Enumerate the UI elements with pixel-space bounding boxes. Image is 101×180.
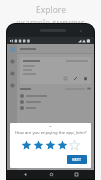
button[interactable]: Rate 2 stars <box>33 140 44 151</box>
button[interactable] <box>20 99 91 105</box>
button[interactable]: Delete <box>83 76 88 81</box>
button[interactable]: Rate 3 stars <box>45 140 56 151</box>
staticText: How are you enjoying the app, John? <box>15 130 87 136</box>
button[interactable]: Rate 4 stars <box>57 140 68 151</box>
button[interactable]: Settings <box>10 83 15 88</box>
button[interactable] <box>20 105 91 111</box>
button[interactable]: More options <box>88 47 91 50</box>
button[interactable]: NEXT <box>67 155 87 164</box>
button[interactable]: Rate 5 stars <box>69 140 80 151</box>
button[interactable]: Reports <box>10 71 15 76</box>
button[interactable]: Recent apps <box>68 170 84 179</box>
button[interactable]: Edit <box>73 76 78 81</box>
staticText: Explore <box>36 4 66 16</box>
staticText: NEXT <box>72 157 82 162</box>
button[interactable]: Rate 1 stars <box>21 140 32 151</box>
button[interactable]: Duplicate <box>63 76 68 81</box>
button[interactable]: Visibility <box>87 87 91 90</box>
button[interactable]: Back <box>17 170 33 179</box>
staticText: example surveys <box>16 17 85 29</box>
button[interactable]: People <box>10 59 15 64</box>
button[interactable] <box>20 93 91 99</box>
button[interactable]: Duplicate <box>20 57 91 84</box>
button[interactable]: Home <box>43 170 59 179</box>
